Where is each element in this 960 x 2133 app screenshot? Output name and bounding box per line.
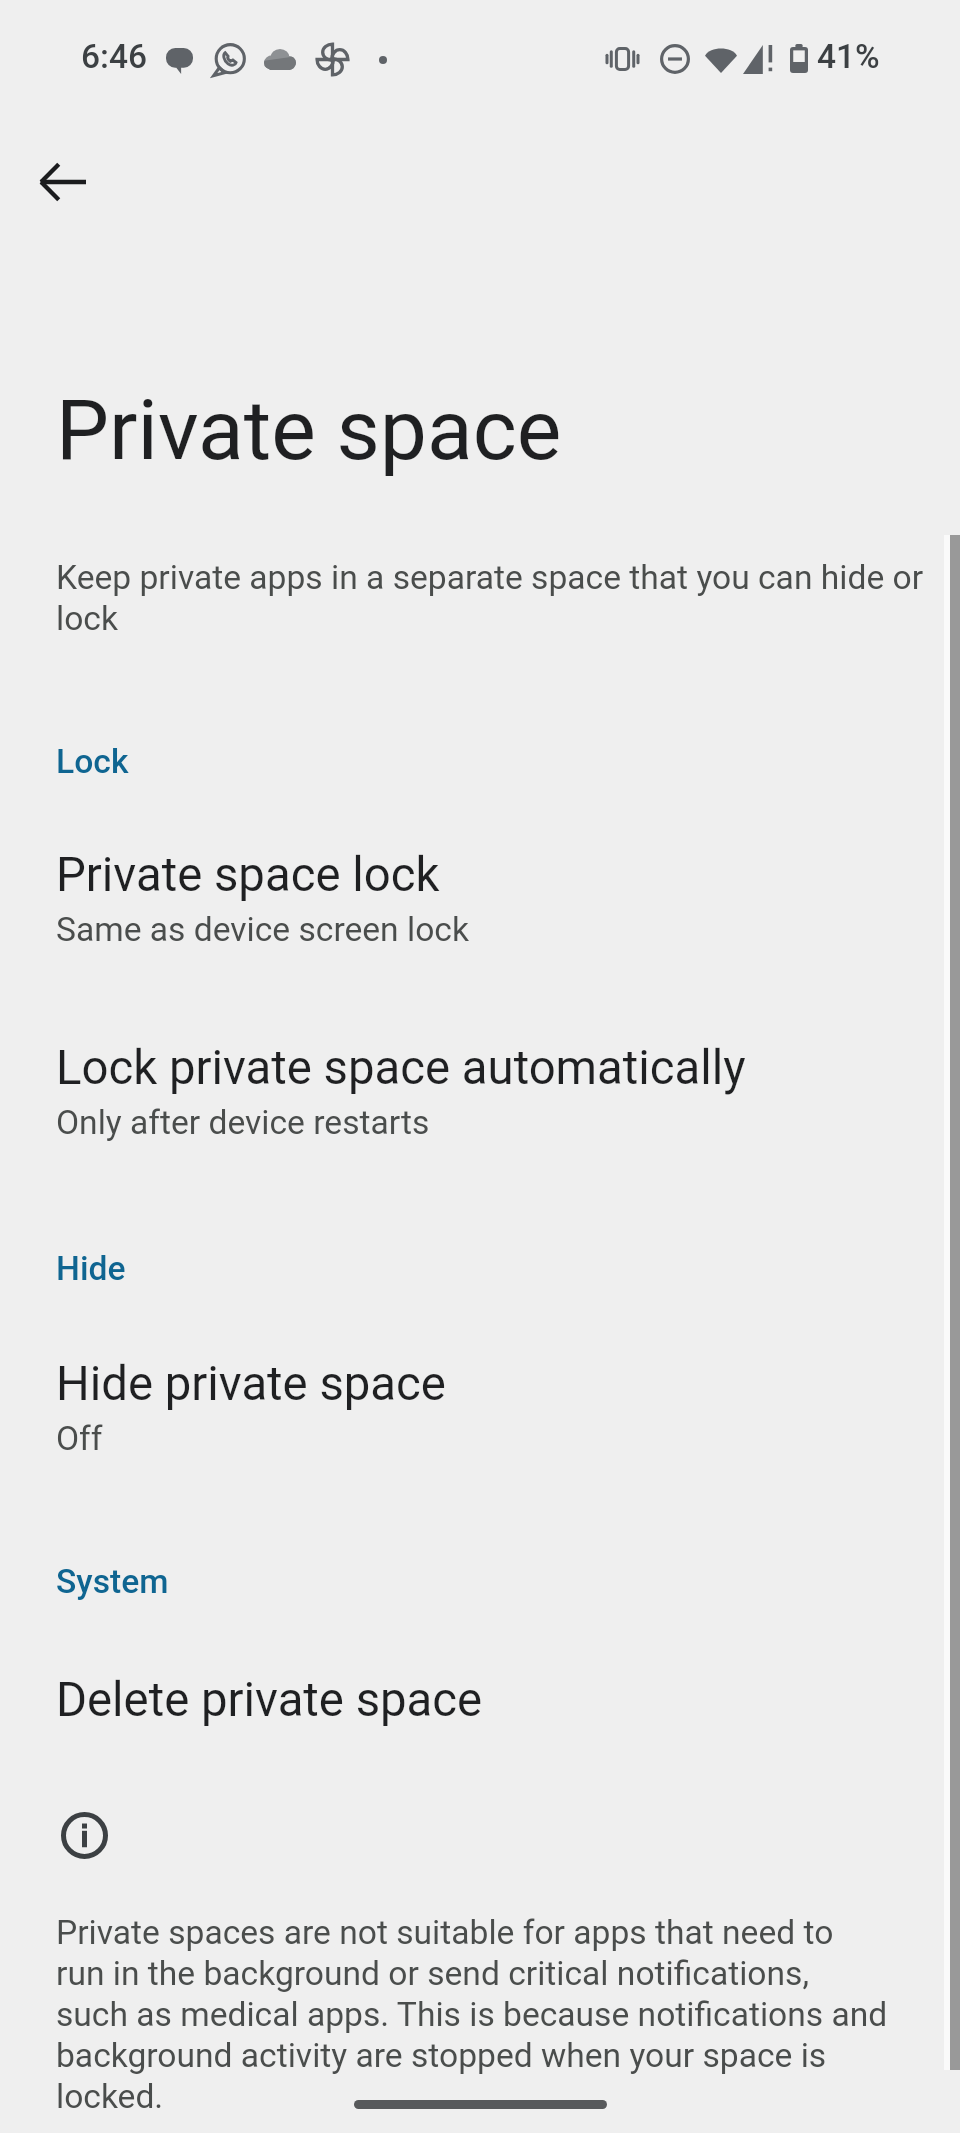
staticText: Private spaces are not suitable for apps… — [56, 1913, 888, 2117]
staticText: Hide — [56, 1249, 126, 1288]
staticText: Lock private space automatically — [56, 1040, 746, 1095]
staticText: 6:46 — [81, 37, 148, 76]
staticText: Lock — [56, 742, 129, 781]
staticText: Same as device screen lock — [56, 910, 469, 949]
staticText: Only after device restarts — [56, 1103, 430, 1142]
staticText: Keep private apps in a separate space th… — [56, 558, 936, 638]
button[interactable]: Lock — [0, 716, 960, 794]
button[interactable]: Private space lock — [0, 813, 960, 976]
button[interactable]: System — [0, 1536, 960, 1614]
staticText: Off — [56, 1419, 103, 1458]
staticText: Hide private space — [56, 1356, 446, 1411]
button[interactable]: Hide — [0, 1223, 960, 1301]
button[interactable]: Delete private space — [0, 1638, 960, 1750]
button[interactable]: Lock private space automatically — [0, 1006, 960, 1169]
staticText: 41% — [817, 37, 880, 76]
button[interactable]: Back — [0, 120, 124, 244]
button[interactable]: Hide private space — [0, 1322, 960, 1485]
staticText: Private space — [56, 381, 562, 479]
staticText: Delete private space — [56, 1672, 483, 1727]
staticText: System — [56, 1562, 169, 1601]
staticText: Private space lock — [56, 847, 440, 902]
